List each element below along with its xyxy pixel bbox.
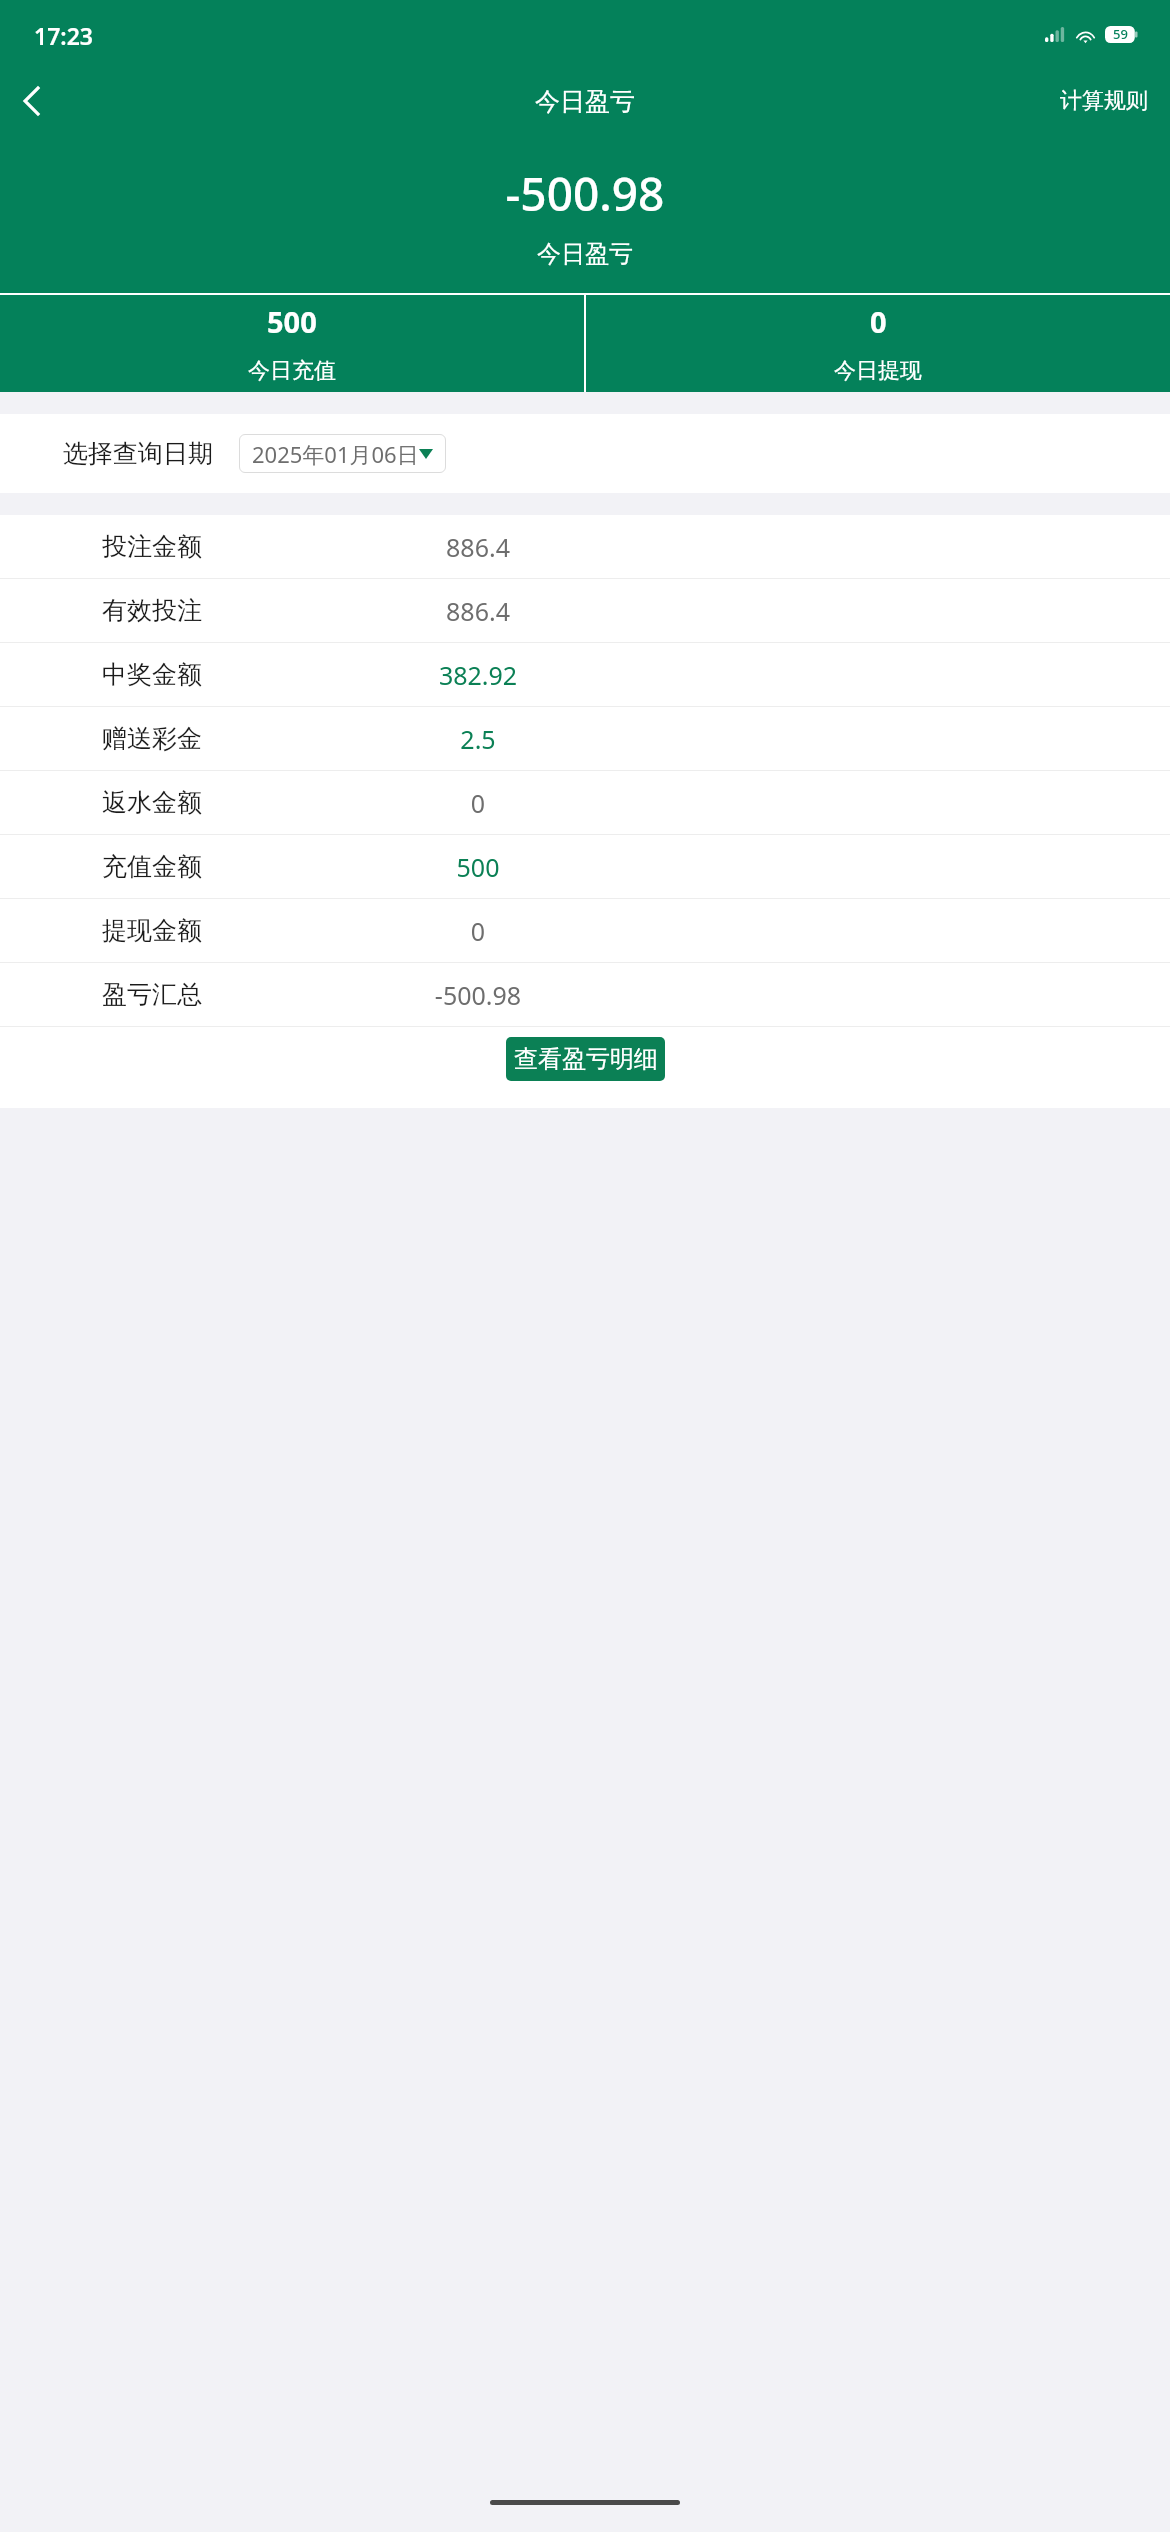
staticText: 17:23 <box>34 20 93 51</box>
staticText: 盈亏汇总 <box>102 979 202 1010</box>
staticText: 查看盈亏明细 <box>514 1044 658 1074</box>
staticText: 0 <box>870 302 887 341</box>
staticText: -500.98 <box>0 162 1170 225</box>
staticText: 充值金额 <box>102 851 202 882</box>
staticText: 选择查询日期 <box>63 438 213 469</box>
staticText: 0 <box>378 914 578 948</box>
button[interactable]: 500 <box>0 295 584 392</box>
staticText: 返水金额 <box>102 787 202 818</box>
button[interactable]: 提现金额 <box>0 899 1170 962</box>
staticText: 2025年01月06日 <box>252 439 419 469</box>
button[interactable]: 0 <box>586 295 1170 392</box>
staticText: 有效投注 <box>102 595 202 626</box>
staticText: 0 <box>378 786 578 820</box>
button[interactable]: 计算规则 <box>1038 73 1170 129</box>
staticText: 投注金额 <box>102 531 202 562</box>
staticText: 59 <box>1113 25 1128 43</box>
staticText: 500 <box>378 850 578 884</box>
staticText: 今日盈亏 <box>0 239 1170 269</box>
button[interactable]: 中奖金额 <box>0 643 1170 706</box>
button[interactable]: 有效投注 <box>0 579 1170 642</box>
staticText: -500.98 <box>378 978 578 1012</box>
staticText: 500 <box>267 302 317 341</box>
staticText: 今日盈亏 <box>535 86 635 117</box>
staticText: 今日充值 <box>248 357 336 385</box>
staticText: 计算规则 <box>1060 87 1148 115</box>
button[interactable]: 2025年01月06日 <box>239 434 446 473</box>
staticText: 提现金额 <box>102 915 202 946</box>
staticText: 今日提现 <box>834 357 922 385</box>
staticText: 382.92 <box>378 658 578 692</box>
staticText: 2.5 <box>378 722 578 756</box>
button[interactable]: 投注金额 <box>0 515 1170 578</box>
staticText: 886.4 <box>378 530 578 564</box>
staticText: 赠送彩金 <box>102 723 202 754</box>
staticText: 中奖金额 <box>102 659 202 690</box>
button[interactable]: 返水金额 <box>0 771 1170 834</box>
staticText: 886.4 <box>378 594 578 628</box>
button[interactable]: 赠送彩金 <box>0 707 1170 770</box>
button[interactable]: 充值金额 <box>0 835 1170 898</box>
button[interactable]: Back <box>0 70 62 132</box>
button[interactable]: 查看盈亏明细 <box>506 1037 665 1081</box>
button[interactable]: 盈亏汇总 <box>0 963 1170 1026</box>
